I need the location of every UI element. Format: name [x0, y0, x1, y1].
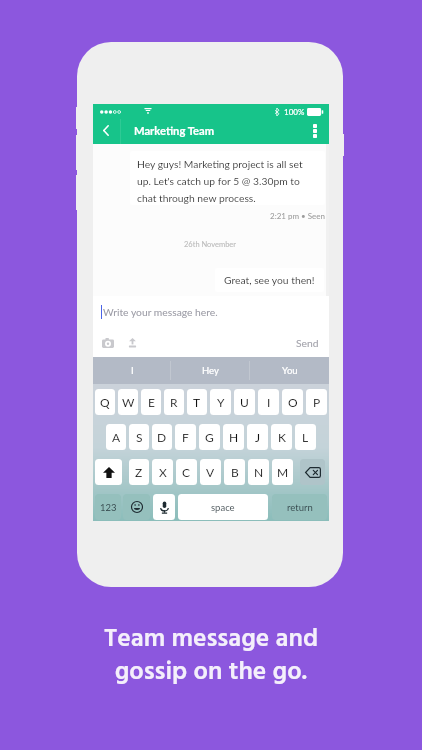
button[interactable]: R — [164, 389, 184, 415]
staticText: Team message and gossip on the go. — [0, 619, 422, 693]
staticText: A — [112, 430, 121, 444]
staticText: 123 — [100, 502, 117, 513]
button[interactable]: Back — [93, 119, 119, 144]
staticText: Great, see you then! — [224, 274, 315, 286]
button[interactable]: J — [247, 424, 268, 450]
button[interactable]: B — [224, 459, 245, 485]
staticText: Y — [217, 395, 225, 409]
staticText: You — [282, 365, 298, 376]
staticText: D — [157, 430, 167, 444]
staticText: Marketing Team — [134, 124, 215, 137]
button[interactable]: L — [295, 424, 316, 450]
button[interactable]: space — [178, 494, 268, 520]
button[interactable]: G — [199, 424, 220, 450]
staticText: L — [302, 430, 309, 444]
button[interactable]: Q — [95, 389, 115, 415]
staticText: P — [313, 395, 321, 409]
button[interactable]: T — [187, 389, 207, 415]
button[interactable]: U — [234, 389, 255, 415]
button[interactable]: V — [200, 459, 221, 485]
staticText: X — [159, 465, 167, 479]
button[interactable]: K — [271, 424, 292, 450]
staticText: C — [182, 465, 191, 479]
button[interactable]: O — [282, 389, 303, 415]
button[interactable]: 123 — [95, 494, 121, 520]
button[interactable]: H — [223, 424, 244, 450]
button[interactable]: D — [152, 424, 172, 450]
button[interactable]: Emoji — [123, 494, 150, 520]
button[interactable]: You — [250, 357, 329, 384]
staticText: W — [122, 395, 135, 409]
button[interactable]: N — [248, 459, 269, 485]
staticText: B — [231, 465, 239, 479]
staticText: I — [131, 365, 134, 376]
button[interactable]: return — [272, 494, 327, 520]
staticText: Hey guys! Marketing project is all set u… — [137, 158, 317, 204]
button[interactable]: A — [106, 424, 126, 450]
button[interactable]: F — [175, 424, 196, 450]
button[interactable]: Hey — [171, 357, 250, 384]
staticText: R — [170, 395, 178, 409]
button[interactable]: S — [129, 424, 149, 450]
staticText: G — [205, 430, 214, 444]
staticText: T — [193, 395, 201, 409]
staticText: U — [240, 395, 249, 409]
staticText: Q — [100, 395, 110, 409]
button[interactable]: M — [272, 459, 293, 485]
staticText: 2:21 pm • Seen — [270, 211, 325, 221]
button[interactable]: More options — [301, 119, 329, 144]
button[interactable]: Hey guys! Marketing project is all set u… — [130, 151, 325, 205]
button[interactable]: I — [93, 357, 171, 384]
staticText: 100% — [284, 107, 305, 117]
button[interactable]: Y — [210, 389, 231, 415]
staticText: S — [136, 430, 143, 444]
staticText: E — [148, 395, 155, 409]
staticText: N — [254, 465, 264, 479]
button[interactable]: Backspace — [300, 459, 325, 485]
button[interactable]: Camera — [98, 333, 118, 353]
staticText: V — [206, 465, 215, 479]
staticText: F — [182, 430, 189, 444]
button[interactable]: I — [258, 389, 279, 415]
button[interactable]: C — [176, 459, 197, 485]
button[interactable]: P — [306, 389, 327, 415]
staticText: space — [211, 502, 235, 513]
button[interactable]: Shift — [95, 459, 122, 485]
staticText: Write your message here. — [103, 306, 218, 318]
staticText: Z — [135, 465, 143, 479]
staticText: J — [255, 430, 261, 444]
staticText: Send — [296, 337, 319, 349]
button[interactable]: Z — [129, 459, 149, 485]
staticText: O — [288, 395, 298, 409]
button[interactable]: Attach file — [122, 333, 142, 353]
button[interactable]: Voice input — [153, 494, 175, 520]
button[interactable]: E — [141, 389, 161, 415]
staticText: I — [267, 395, 271, 409]
staticText: K — [278, 430, 286, 444]
staticText: Hey — [202, 365, 219, 376]
button[interactable]: X — [152, 459, 173, 485]
button[interactable]: Send — [286, 332, 329, 354]
staticText: H — [229, 430, 239, 444]
button[interactable]: W — [118, 389, 138, 415]
button[interactable]: Great, see you then! — [215, 268, 324, 292]
staticText: 26th November — [184, 240, 237, 249]
staticText: return — [287, 502, 313, 513]
staticText: M — [277, 465, 289, 479]
